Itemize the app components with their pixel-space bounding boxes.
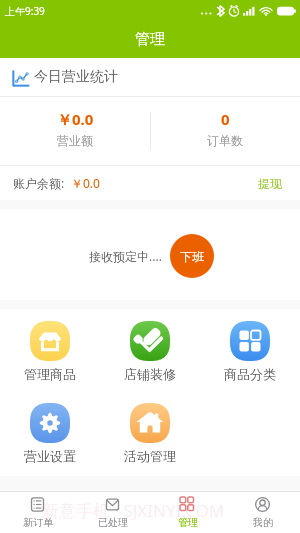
button[interactable]: 活动管理 (100, 403, 200, 464)
button[interactable]: 已处理 (75, 492, 150, 533)
staticText: 提现 (258, 176, 282, 191)
staticText: 管理商品 (24, 366, 76, 382)
button[interactable]: 管理商品 (0, 321, 100, 382)
staticText: ￥0.0 (57, 109, 94, 129)
staticText: 营业额 (57, 133, 93, 148)
staticText: 营业设置 (24, 448, 76, 464)
button[interactable]: 新订单 (0, 492, 75, 533)
button[interactable]: 我的 (225, 492, 300, 533)
staticText: 接收预定中.... (89, 248, 162, 264)
button[interactable]: 管理 (150, 492, 225, 533)
staticText: 今日营业统计 (34, 68, 118, 86)
staticText: 管理 (178, 516, 198, 529)
staticText: 新意手机 · SJXINYI.COM (42, 499, 225, 522)
staticText: 商品分类 (224, 366, 276, 382)
button[interactable]: 下班 (170, 234, 214, 278)
staticText: 我的 (253, 516, 273, 529)
staticText: 活动管理 (124, 448, 176, 464)
staticText: 上午9:39 (5, 4, 45, 18)
staticText: 0 (221, 109, 230, 129)
staticText: 下班 (180, 249, 204, 264)
button[interactable]: 提现 (258, 176, 282, 191)
staticText: ￥0.0 (71, 175, 100, 191)
staticText: 店铺装修 (124, 366, 176, 382)
button[interactable]: 营业设置 (0, 403, 100, 464)
staticText: 已处理 (98, 516, 128, 529)
staticText: 新订单 (23, 516, 53, 529)
staticText: 账户余额: (13, 175, 65, 191)
staticText: 管理 (135, 30, 165, 49)
button[interactable]: 店铺装修 (100, 321, 200, 382)
button[interactable]: 商品分类 (200, 321, 300, 382)
staticText: 订单数 (207, 133, 243, 148)
